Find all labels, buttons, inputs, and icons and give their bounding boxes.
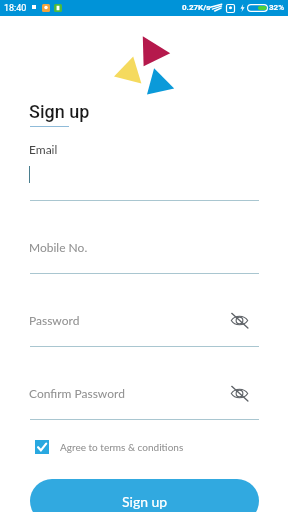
- staticText: Sign up: [122, 493, 168, 510]
- button[interactable]: Sign up: [30, 479, 259, 512]
- staticText: 0.27K/s: [182, 3, 211, 12]
- staticText: Confirm Password: [29, 386, 125, 400]
- button[interactable]: Toggle password visibility: [229, 383, 250, 404]
- button[interactable]: Agree to terms & conditions: [33, 440, 184, 454]
- staticText: Sign up: [29, 101, 90, 122]
- staticText: Agree to terms & conditions: [60, 441, 184, 453]
- button[interactable]: Toggle password visibility: [229, 310, 250, 331]
- staticText: 32%: [269, 3, 285, 12]
- staticText: Email: [29, 142, 58, 156]
- staticText: 18:40: [4, 3, 27, 14]
- staticText: Password: [29, 313, 80, 327]
- staticText: Mobile No.: [29, 240, 88, 254]
